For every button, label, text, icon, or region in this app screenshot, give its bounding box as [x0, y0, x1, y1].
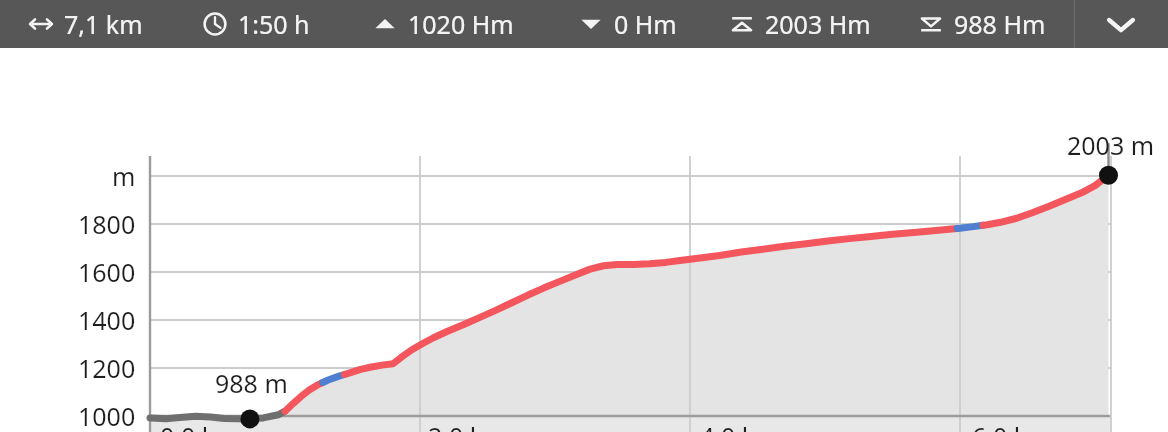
staticText: 0 Hm [614, 7, 677, 41]
staticText: 6,0 km [972, 419, 1051, 432]
staticText: 1020 Hm [408, 7, 514, 41]
other: Maximum 2003 Hm [729, 11, 755, 37]
staticText: 7,1 km [64, 7, 143, 41]
staticText: 1200 [78, 351, 136, 385]
button[interactable]: Collapse [1075, 0, 1167, 48]
other: Duration 1:50 h [202, 11, 228, 37]
button[interactable]: Minimum 988 Hm [890, 0, 1074, 48]
button[interactable]: Distance 7,1 km [0, 0, 170, 48]
other: Distance 7,1 km [28, 11, 54, 37]
button[interactable]: Descent 0 Hm [544, 0, 710, 48]
staticText: 988 m [215, 366, 288, 400]
staticText: 1600 [78, 255, 136, 289]
other: Ascent 1020 Hm [372, 11, 398, 37]
other: Minimum 988 Hm [918, 11, 944, 37]
button[interactable]: Maximum 2003 Hm [710, 0, 890, 48]
staticText: 4,0 km [700, 419, 779, 432]
staticText: 2,0 km [428, 419, 507, 432]
staticText: 1:50 h [238, 7, 310, 41]
staticText: 988 Hm [954, 7, 1046, 41]
other: Descent 0 Hm [578, 11, 604, 37]
staticText: 2003 m [1067, 128, 1155, 162]
staticText: 2003 Hm [765, 7, 871, 41]
staticText: 0,0 km [160, 419, 239, 432]
staticText: 1000 [78, 399, 136, 432]
staticText: m [112, 159, 136, 193]
staticText: 1800 [78, 207, 136, 241]
staticText: 1400 [78, 303, 136, 337]
button[interactable]: Duration 1:50 h [170, 0, 342, 48]
button[interactable]: Ascent 1020 Hm [342, 0, 544, 48]
